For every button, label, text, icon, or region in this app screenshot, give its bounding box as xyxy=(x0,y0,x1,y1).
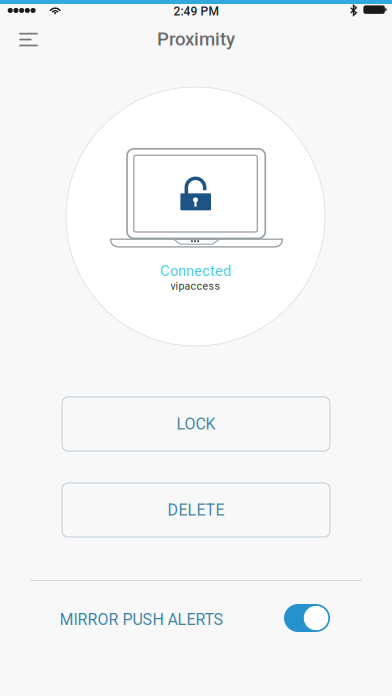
staticText: LOCK xyxy=(176,415,215,433)
staticText: Proximity xyxy=(157,28,235,50)
staticText: MIRROR PUSH ALERTS xyxy=(59,610,223,629)
staticText: vipaccess xyxy=(170,280,220,292)
staticText: 2:49 PM xyxy=(173,4,218,19)
staticText: DELETE xyxy=(167,501,224,519)
button[interactable]: Mirror push alerts xyxy=(284,604,330,632)
button[interactable]: LOCK xyxy=(62,397,330,451)
button[interactable]: Menu xyxy=(6,18,52,62)
button[interactable]: DELETE xyxy=(62,483,330,537)
staticText: Connected xyxy=(160,262,231,280)
